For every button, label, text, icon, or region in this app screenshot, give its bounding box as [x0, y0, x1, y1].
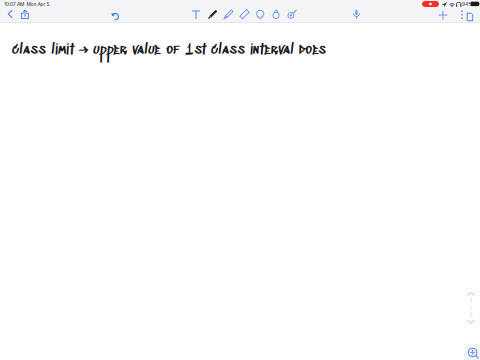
button[interactable]: Share — [15, 4, 35, 24]
staticText: 2 — [469, 312, 472, 318]
staticText: 94% — [462, 1, 473, 7]
button[interactable]: More — [452, 4, 472, 24]
button[interactable]: Previous page — [466, 291, 475, 297]
button[interactable]: Pen — [202, 4, 222, 24]
button[interactable]: Shapes — [266, 4, 286, 24]
button[interactable]: Text tool — [186, 4, 206, 24]
staticText: Mon Apr 5 — [26, 1, 49, 7]
button[interactable]: Color picker — [282, 4, 302, 24]
button[interactable]: Next page — [466, 319, 475, 325]
button[interactable]: Dictate — [346, 4, 366, 24]
button[interactable]: Zoom — [464, 344, 480, 360]
button[interactable]: Eraser — [234, 4, 254, 24]
staticText: 10:07 AM — [4, 1, 24, 7]
button[interactable]: Add page — [433, 4, 453, 24]
button[interactable]: Pages — [460, 4, 480, 24]
staticText: / — [470, 305, 472, 311]
staticText: class limit → upper value of 1st class i… — [12, 41, 326, 59]
button[interactable]: Undo — [105, 4, 125, 24]
button[interactable]: Back — [0, 4, 20, 24]
button[interactable]: Lasso — [250, 4, 270, 24]
button[interactable]: Highlighter — [218, 4, 238, 24]
staticText: 1 — [470, 298, 472, 304]
